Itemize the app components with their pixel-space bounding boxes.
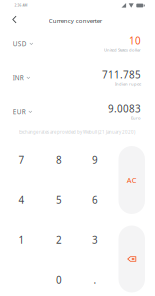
button[interactable]: 8	[42, 141, 76, 179]
staticText: 10	[129, 34, 141, 47]
staticText: 7	[18, 153, 24, 166]
staticText: 9	[92, 153, 98, 166]
staticText: 0	[56, 273, 62, 286]
staticText: United States dollar	[104, 47, 141, 53]
button[interactable]: 4	[4, 181, 38, 219]
staticText: 6	[92, 193, 98, 206]
staticText: Exchange rates are provided by Webull (2…	[19, 129, 135, 135]
staticText: INR	[13, 73, 24, 82]
staticText: AC	[127, 175, 137, 185]
staticText: EUR	[13, 107, 26, 116]
button[interactable]: 1	[4, 221, 38, 259]
staticText: 9.0083	[108, 102, 141, 115]
staticText: USD	[13, 39, 27, 48]
staticText: Indian rupee	[115, 81, 141, 87]
button[interactable]: Delete	[118, 225, 145, 292]
staticText: 3	[92, 233, 98, 246]
button[interactable]: Back	[5, 10, 23, 28]
button[interactable]: 6	[78, 181, 112, 219]
button[interactable]: 5	[42, 181, 76, 219]
button[interactable]: .	[78, 261, 112, 296]
button[interactable]: EUR	[0, 96, 155, 130]
button[interactable]: 7	[4, 141, 38, 179]
staticText: Currency converter	[49, 17, 102, 25]
staticText: 711.785	[102, 68, 141, 81]
button[interactable]: 2	[42, 221, 76, 259]
button[interactable]: 3	[78, 221, 112, 259]
button[interactable]: AC	[118, 146, 145, 214]
staticText: 8	[56, 153, 62, 166]
staticText: .	[93, 273, 96, 286]
staticText: 1	[18, 233, 24, 246]
button[interactable]: 9	[78, 141, 112, 179]
button[interactable]: 0	[42, 261, 76, 296]
staticText: 4	[18, 193, 24, 206]
staticText: 2	[56, 233, 62, 246]
staticText: Euro	[131, 115, 141, 121]
staticText: 5	[56, 193, 62, 206]
button[interactable]: INR	[0, 62, 155, 96]
button[interactable]: USD	[0, 28, 155, 62]
staticText: 2:36 AM	[14, 3, 27, 7]
